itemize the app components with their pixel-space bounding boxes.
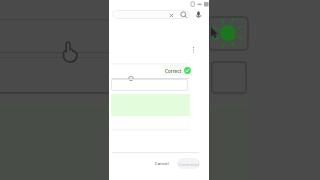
staticText: Cancel <box>155 160 169 166</box>
button[interactable]: More options <box>189 45 198 54</box>
button[interactable]: Cancel <box>152 157 172 169</box>
button[interactable]: Correct <box>163 65 192 76</box>
button[interactable]: Comment <box>177 158 200 169</box>
button[interactable] <box>111 79 188 91</box>
staticText: Comment <box>179 161 199 167</box>
button[interactable]: Voice search <box>192 8 205 21</box>
staticText: Correct <box>165 68 182 74</box>
button[interactable] <box>112 10 190 19</box>
